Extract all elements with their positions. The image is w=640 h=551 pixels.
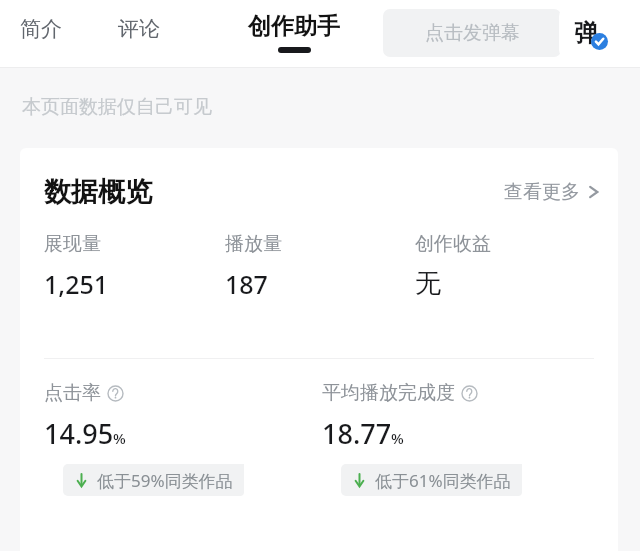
button[interactable]: 低于61%同类作品 xyxy=(341,464,522,496)
staticText: 展现量 xyxy=(44,232,101,256)
staticText: 创作收益 xyxy=(415,232,491,256)
button[interactable]: 弹幕设置 xyxy=(559,9,612,57)
staticText: 187 xyxy=(225,267,268,301)
button[interactable]: 简介 xyxy=(10,8,72,50)
staticText: 评论 xyxy=(118,16,160,42)
button[interactable]: 评论 xyxy=(108,8,170,50)
staticText: 点击发弹幕 xyxy=(425,21,520,45)
staticText: 14.95% xyxy=(44,415,126,452)
staticText: 平均播放完成度 xyxy=(322,381,455,405)
staticText: 18.77% xyxy=(322,415,404,452)
button[interactable]: 展现量 xyxy=(44,232,117,301)
staticText: 低于59%同类作品 xyxy=(97,469,233,492)
staticText: 本页面数据仅自己可见 xyxy=(22,95,212,119)
button[interactable]: 低于59%同类作品 xyxy=(63,464,244,496)
button[interactable]: 创作收益 xyxy=(415,232,499,300)
staticText: 查看更多 xyxy=(504,180,580,204)
staticText: 创作助手 xyxy=(248,12,340,41)
staticText: 数据概览 xyxy=(44,175,152,209)
button[interactable]: 点击率 xyxy=(44,381,244,496)
staticText: 低于61%同类作品 xyxy=(375,469,511,492)
staticText: 弹 xyxy=(574,18,598,48)
staticText: 点击率 xyxy=(44,381,101,405)
button[interactable]: 点击发弹幕 xyxy=(383,9,561,57)
button[interactable]: 查看更多 xyxy=(498,174,606,210)
button[interactable]: 播放量 xyxy=(225,232,290,301)
button[interactable]: 平均播放完成度 xyxy=(322,381,522,496)
button[interactable]: 创作助手 xyxy=(238,6,350,59)
staticText: 播放量 xyxy=(225,232,282,256)
staticText: 无 xyxy=(415,267,441,300)
staticText: 简介 xyxy=(20,16,62,42)
staticText: 1,251 xyxy=(44,267,109,301)
